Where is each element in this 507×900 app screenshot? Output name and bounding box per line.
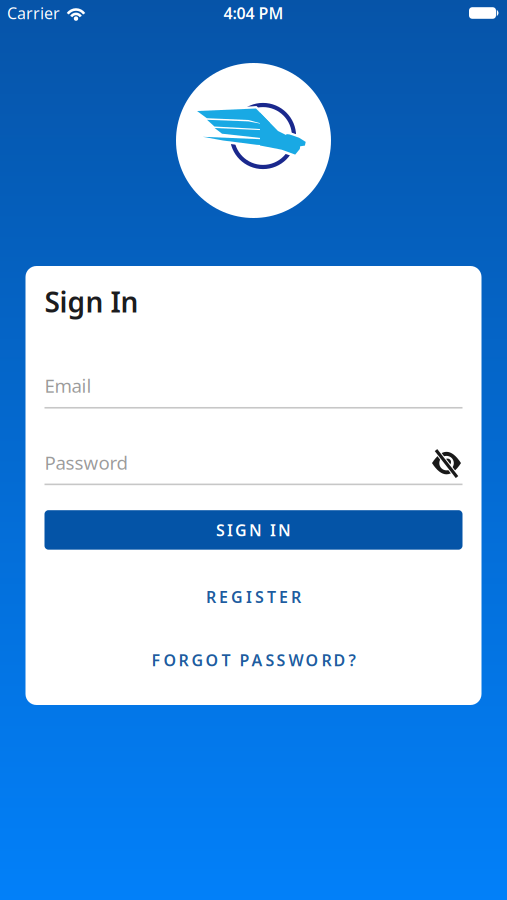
staticText: Email [44,373,91,398]
staticText: Password [44,450,127,475]
button[interactable]: F O R G O T P A S S W O R D ? [44,649,462,671]
button[interactable]: Show password [430,447,462,479]
button[interactable]: R E G I S T E R [44,586,462,607]
staticText: 4:04 PM [223,2,283,24]
staticText: Carrier [7,2,60,24]
button[interactable]: Email [44,373,462,409]
staticText: F O R G O T P A S S W O R D ? [151,649,355,671]
staticText: R E G I S T E R [206,586,301,607]
button[interactable]: S I G N I N [44,510,462,550]
staticText: S I G N I N [216,519,291,540]
staticText: Sign In [44,283,138,320]
button[interactable]: Password [44,447,462,485]
